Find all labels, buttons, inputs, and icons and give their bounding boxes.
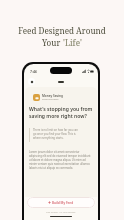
staticText: Your (42, 37, 63, 48)
button[interactable]: Messages (28, 78, 35, 85)
button[interactable]: Build My Feed (27, 197, 95, 208)
staticText: 7:44 (30, 69, 37, 74)
staticText: Free forever · No card needed (46, 211, 76, 214)
staticText: What's stopping you from saving more rig… (29, 106, 95, 120)
staticText: Money Saving (42, 94, 63, 98)
staticText: Build My Feed (52, 201, 74, 205)
button[interactable]: Tab (58, 81, 64, 83)
staticText: 'Life' (63, 37, 82, 48)
staticText: Lorem ipsum dolor sit amet consectetur a… (29, 150, 91, 170)
staticText: Smart Portfolio (42, 98, 59, 101)
button[interactable]: Money Saving (33, 94, 63, 101)
staticText: There is no limit on how far you can go … (33, 128, 79, 140)
staticText: Feed Designed Around (18, 25, 106, 36)
